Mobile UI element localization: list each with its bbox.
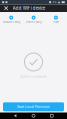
- button[interactable]: Close: [4, 6, 8, 10]
- staticText: Network Config: [3, 21, 20, 23]
- staticText: Done: [53, 21, 58, 23]
- staticText: Select a network: [20, 75, 47, 78]
- button[interactable]: Start Local Provision: [3, 102, 64, 111]
- button[interactable]: Back: [12, 112, 18, 119]
- staticText: Start Local Provision: [17, 105, 50, 109]
- button[interactable]: Recents: [49, 113, 55, 119]
- staticText: Device Config: [26, 21, 41, 23]
- staticText: Add WiFi device: [13, 6, 45, 11]
- button[interactable]: Home: [30, 113, 36, 119]
- staticText: 4G: [52, 1, 56, 4]
